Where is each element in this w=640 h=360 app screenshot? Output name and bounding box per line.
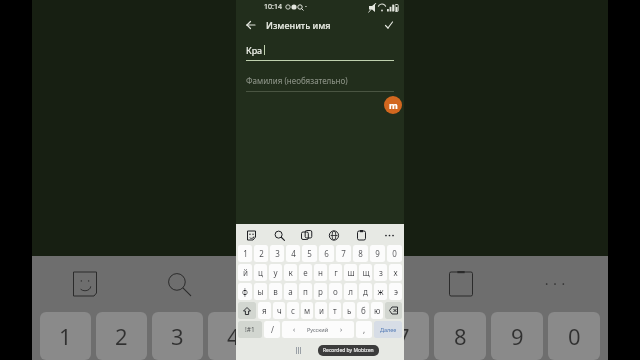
button[interactable]: Save [380, 16, 398, 34]
button[interactable]: 8 [353, 245, 368, 262]
button[interactable]: Фамилия (необязательно) [246, 75, 394, 92]
button[interactable]: 1 [238, 245, 252, 262]
button[interactable]: х [389, 264, 402, 281]
staticText: Далее [380, 326, 397, 333]
button[interactable]: о [329, 283, 342, 300]
button[interactable]: м [301, 302, 313, 319]
staticText: л [348, 286, 353, 297]
staticText: п [303, 286, 308, 297]
button[interactable]: р [314, 283, 327, 300]
staticText: 8 [454, 321, 467, 351]
button[interactable]: 9 [370, 245, 385, 262]
staticText: у [273, 267, 278, 278]
staticText: м [304, 305, 311, 316]
button[interactable]: / [264, 321, 280, 338]
staticText: а [288, 286, 293, 297]
button[interactable]: Mobizen [384, 96, 402, 114]
button[interactable]: ш [344, 264, 357, 281]
staticText: г [334, 267, 338, 278]
button[interactable]: у [269, 264, 282, 281]
button[interactable]: More [380, 226, 398, 244]
button[interactable]: е [299, 264, 312, 281]
button[interactable]: Далее [374, 321, 402, 338]
button[interactable]: б [357, 302, 369, 319]
staticText: 1 [243, 248, 248, 259]
button[interactable]: ф [238, 283, 252, 300]
staticText: д [363, 286, 368, 297]
staticText: т [333, 305, 337, 316]
staticText: ш [347, 267, 355, 278]
staticText: ч [277, 305, 282, 316]
button[interactable]: ю [371, 302, 383, 319]
button[interactable]: щ [359, 264, 372, 281]
staticText: 2 [115, 321, 128, 351]
button[interactable]: ж [374, 283, 387, 300]
button[interactable]: Shift [238, 302, 256, 319]
staticText: 1 [59, 321, 72, 351]
button[interactable]: 5 [302, 245, 317, 262]
button[interactable]: э [389, 283, 402, 300]
button[interactable]: п [299, 283, 312, 300]
button[interactable]: !#1 [238, 321, 262, 338]
button[interactable]: ‹ [282, 321, 354, 338]
staticText: и [319, 305, 324, 316]
staticText: н [318, 267, 323, 278]
staticText: 4 [227, 321, 240, 351]
button[interactable]: г [329, 264, 342, 281]
button[interactable]: а [284, 283, 297, 300]
button[interactable]: н [314, 264, 327, 281]
button[interactable]: 4 [286, 245, 300, 262]
button[interactable]: ь [343, 302, 355, 319]
button[interactable]: Кра [246, 44, 394, 61]
staticText: 3 [171, 321, 184, 351]
staticText: 6 [324, 248, 329, 259]
button[interactable]: и [315, 302, 327, 319]
button[interactable]: Clipboard [352, 226, 370, 244]
button[interactable]: в [269, 283, 282, 300]
button[interactable]: я [258, 302, 271, 319]
staticText: 0 [392, 248, 397, 259]
button[interactable]: 6 [319, 245, 334, 262]
staticText: 0 [568, 321, 581, 351]
button[interactable]: з [374, 264, 387, 281]
staticText: ж [377, 286, 384, 297]
staticText: Фамилия (необязательно) [246, 75, 348, 86]
staticText: ф [242, 286, 248, 297]
button[interactable]: Backspace [385, 302, 402, 319]
button[interactable]: Back [242, 16, 260, 34]
button[interactable]: й [238, 264, 252, 281]
staticText: з [379, 267, 383, 278]
button[interactable]: Translate [325, 226, 343, 244]
button[interactable]: 7 [336, 245, 351, 262]
button[interactable]: 3 [270, 245, 284, 262]
staticText: Кра [246, 44, 263, 56]
staticText: · [305, 2, 307, 12]
button[interactable]: 0 [387, 245, 402, 262]
button[interactable]: ч [273, 302, 285, 319]
staticText: › [340, 325, 343, 335]
staticText: б [361, 305, 366, 316]
staticText: m [389, 99, 398, 111]
staticText: / [271, 324, 274, 335]
button[interactable]: Search [270, 226, 288, 244]
staticText: ь [347, 305, 352, 316]
staticText: 4 [291, 248, 296, 259]
staticText: ю [374, 305, 381, 316]
button[interactable]: с [287, 302, 299, 319]
button[interactable]: т [329, 302, 341, 319]
staticText: !#1 [245, 325, 255, 334]
button[interactable]: ц [254, 264, 267, 281]
staticText: 3 [275, 248, 280, 259]
staticText: к [288, 267, 293, 278]
button[interactable]: д [359, 283, 372, 300]
staticText: х [393, 267, 398, 278]
button[interactable]: л [344, 283, 357, 300]
staticText: я [262, 305, 267, 316]
button[interactable]: к [284, 264, 297, 281]
staticText: 8 [358, 248, 363, 259]
button[interactable]: , [356, 321, 372, 338]
button[interactable]: 2 [254, 245, 268, 262]
button[interactable]: GIF [297, 226, 315, 244]
button[interactable]: ы [254, 283, 267, 300]
button[interactable]: Stickers [242, 226, 260, 244]
